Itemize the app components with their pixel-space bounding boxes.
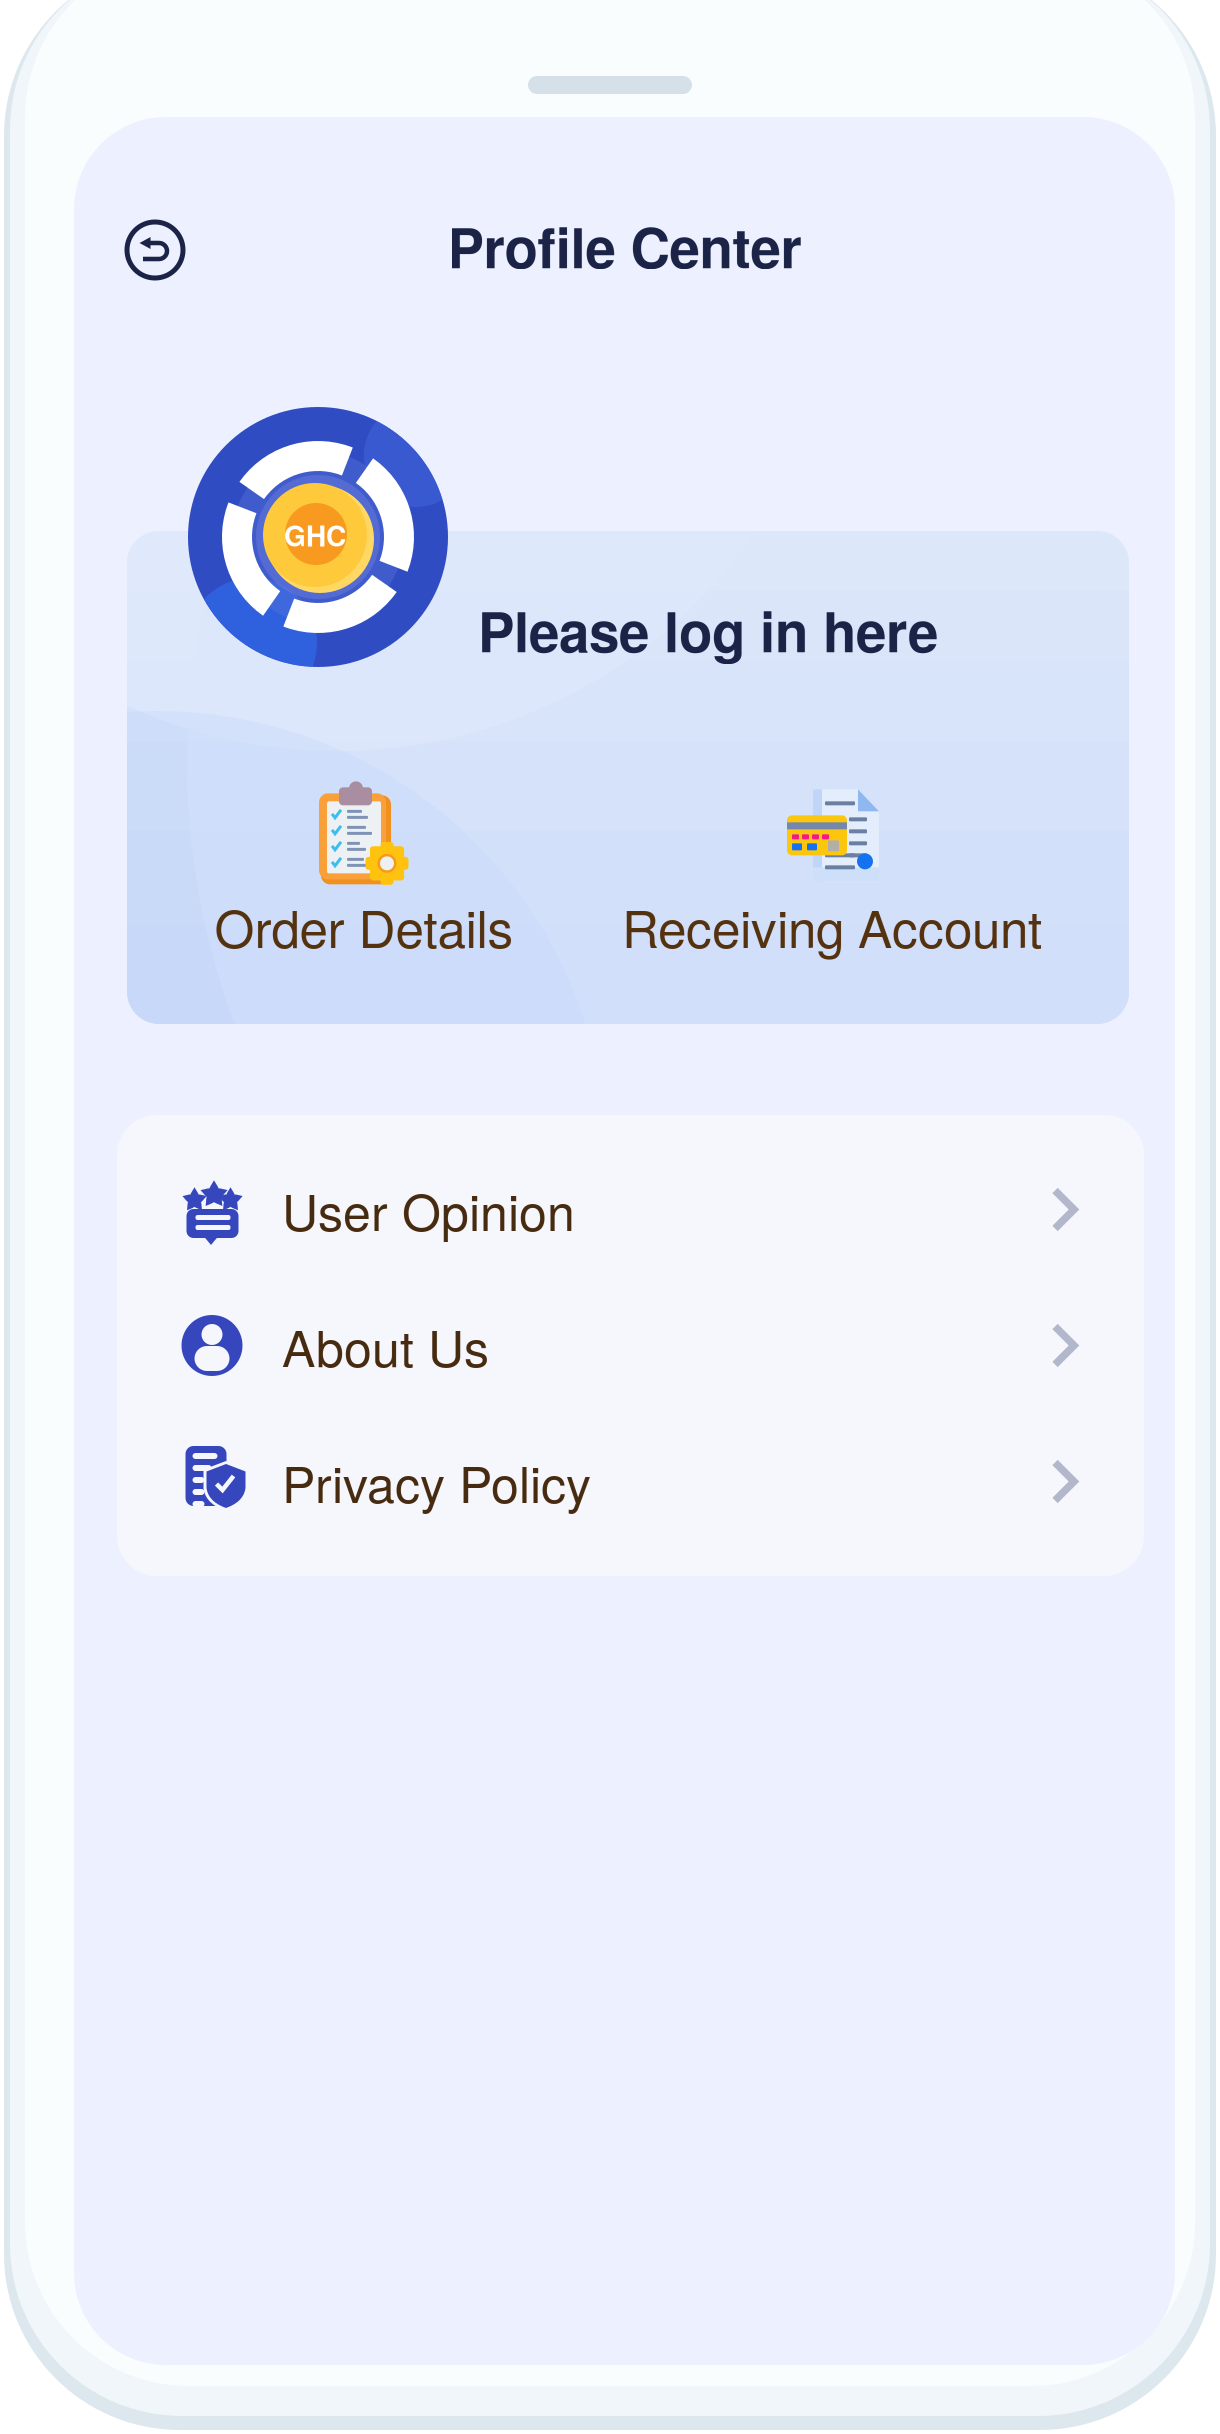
staticText: Profile Center [447,207,801,285]
staticText: GHC [284,515,346,555]
staticText: Please log in here [478,591,938,669]
staticText: About Us [282,1310,489,1381]
button[interactable]: Privacy Policy [117,1413,1144,1549]
staticText: Receiving Account [622,889,1042,963]
button[interactable]: Back [123,218,187,282]
button[interactable]: Order Details [164,783,564,953]
staticText: Privacy Policy [282,1446,591,1517]
button[interactable]: User Opinion [117,1141,1144,1277]
button[interactable]: About Us [117,1277,1144,1413]
staticText: Order Details [214,889,513,963]
staticText: User Opinion [282,1174,575,1245]
button[interactable]: Receiving Account [582,783,1082,953]
